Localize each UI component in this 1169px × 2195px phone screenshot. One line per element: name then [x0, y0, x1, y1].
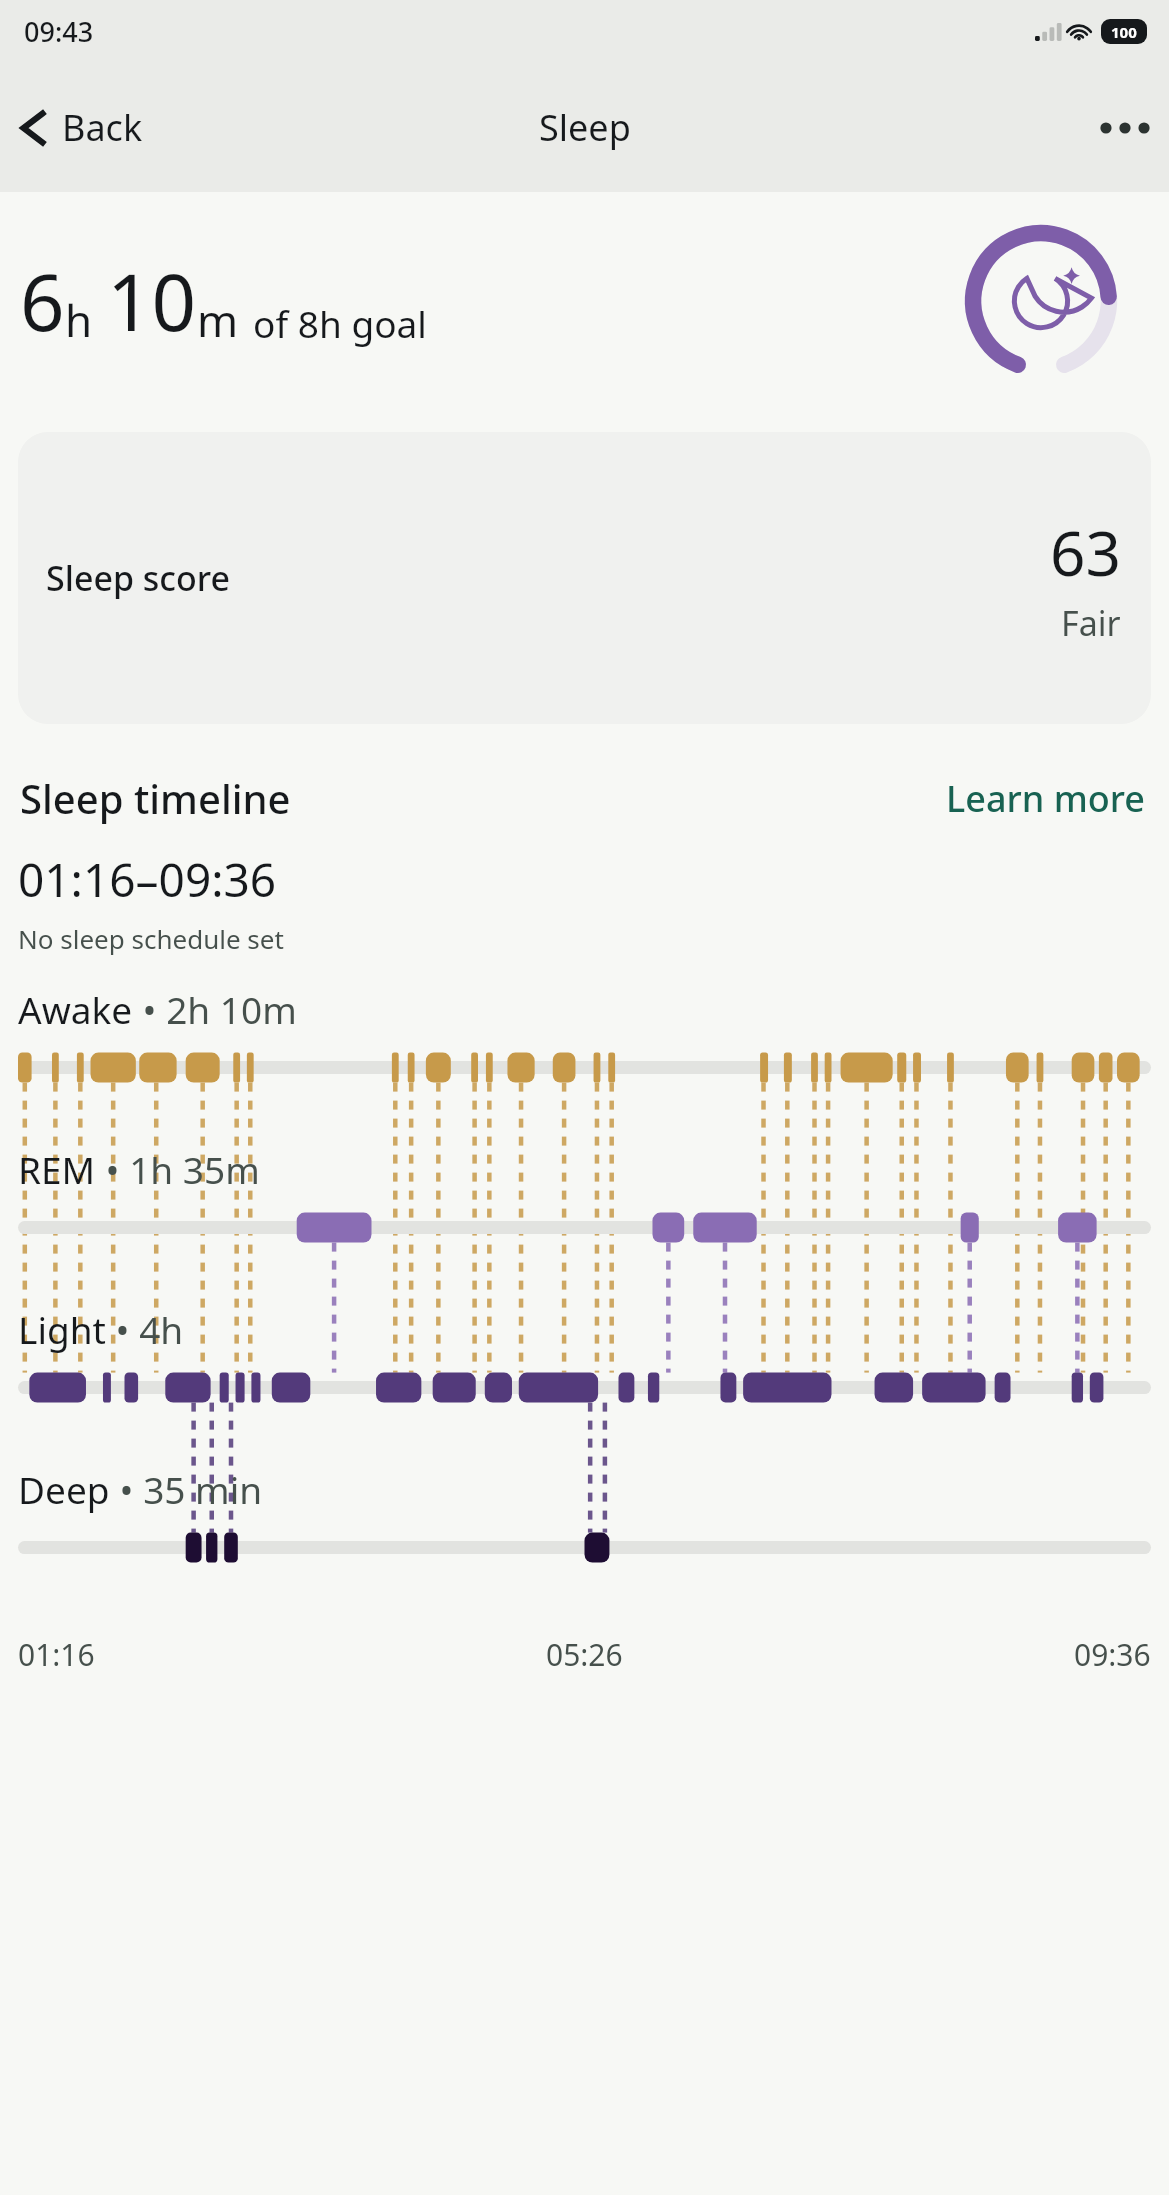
button[interactable]: More options: [1081, 102, 1169, 154]
staticText: 10: [107, 248, 197, 354]
staticText: 01:16: [18, 1634, 95, 1675]
staticText: • 35 min: [110, 1464, 263, 1514]
staticText: 01:16–09:36: [18, 848, 277, 911]
staticText: No sleep schedule set: [18, 921, 284, 956]
staticText: Light: [18, 1304, 106, 1354]
staticText: REM: [18, 1144, 96, 1194]
staticText: m: [197, 290, 239, 350]
staticText: 100: [1111, 22, 1137, 42]
staticText: 09:36: [1074, 1634, 1151, 1675]
staticText: h: [65, 290, 93, 350]
staticText: 6: [20, 248, 65, 354]
staticText: Sleep score: [46, 555, 231, 601]
button[interactable]: Learn more: [942, 770, 1149, 826]
other: Back: [16, 106, 50, 150]
staticText: Awake: [18, 984, 133, 1034]
staticText: Fair: [1061, 600, 1121, 646]
staticText: 05:26: [546, 1634, 623, 1675]
staticText: Back: [62, 103, 143, 152]
staticText: • 2h 10m: [133, 984, 297, 1034]
staticText: of 8h goal: [253, 298, 427, 348]
staticText: Learn more: [946, 774, 1145, 822]
staticText: Sleep: [539, 103, 631, 152]
button[interactable]: Back: [0, 93, 159, 162]
staticText: Sleep timeline: [20, 771, 291, 825]
staticText: • 4h: [106, 1304, 184, 1354]
staticText: 63: [1050, 510, 1121, 594]
staticText: • 1h 35m: [96, 1144, 260, 1194]
staticText: 09:43: [24, 13, 94, 50]
button[interactable]: Sleep score: [18, 432, 1151, 724]
staticText: Deep: [18, 1464, 110, 1514]
